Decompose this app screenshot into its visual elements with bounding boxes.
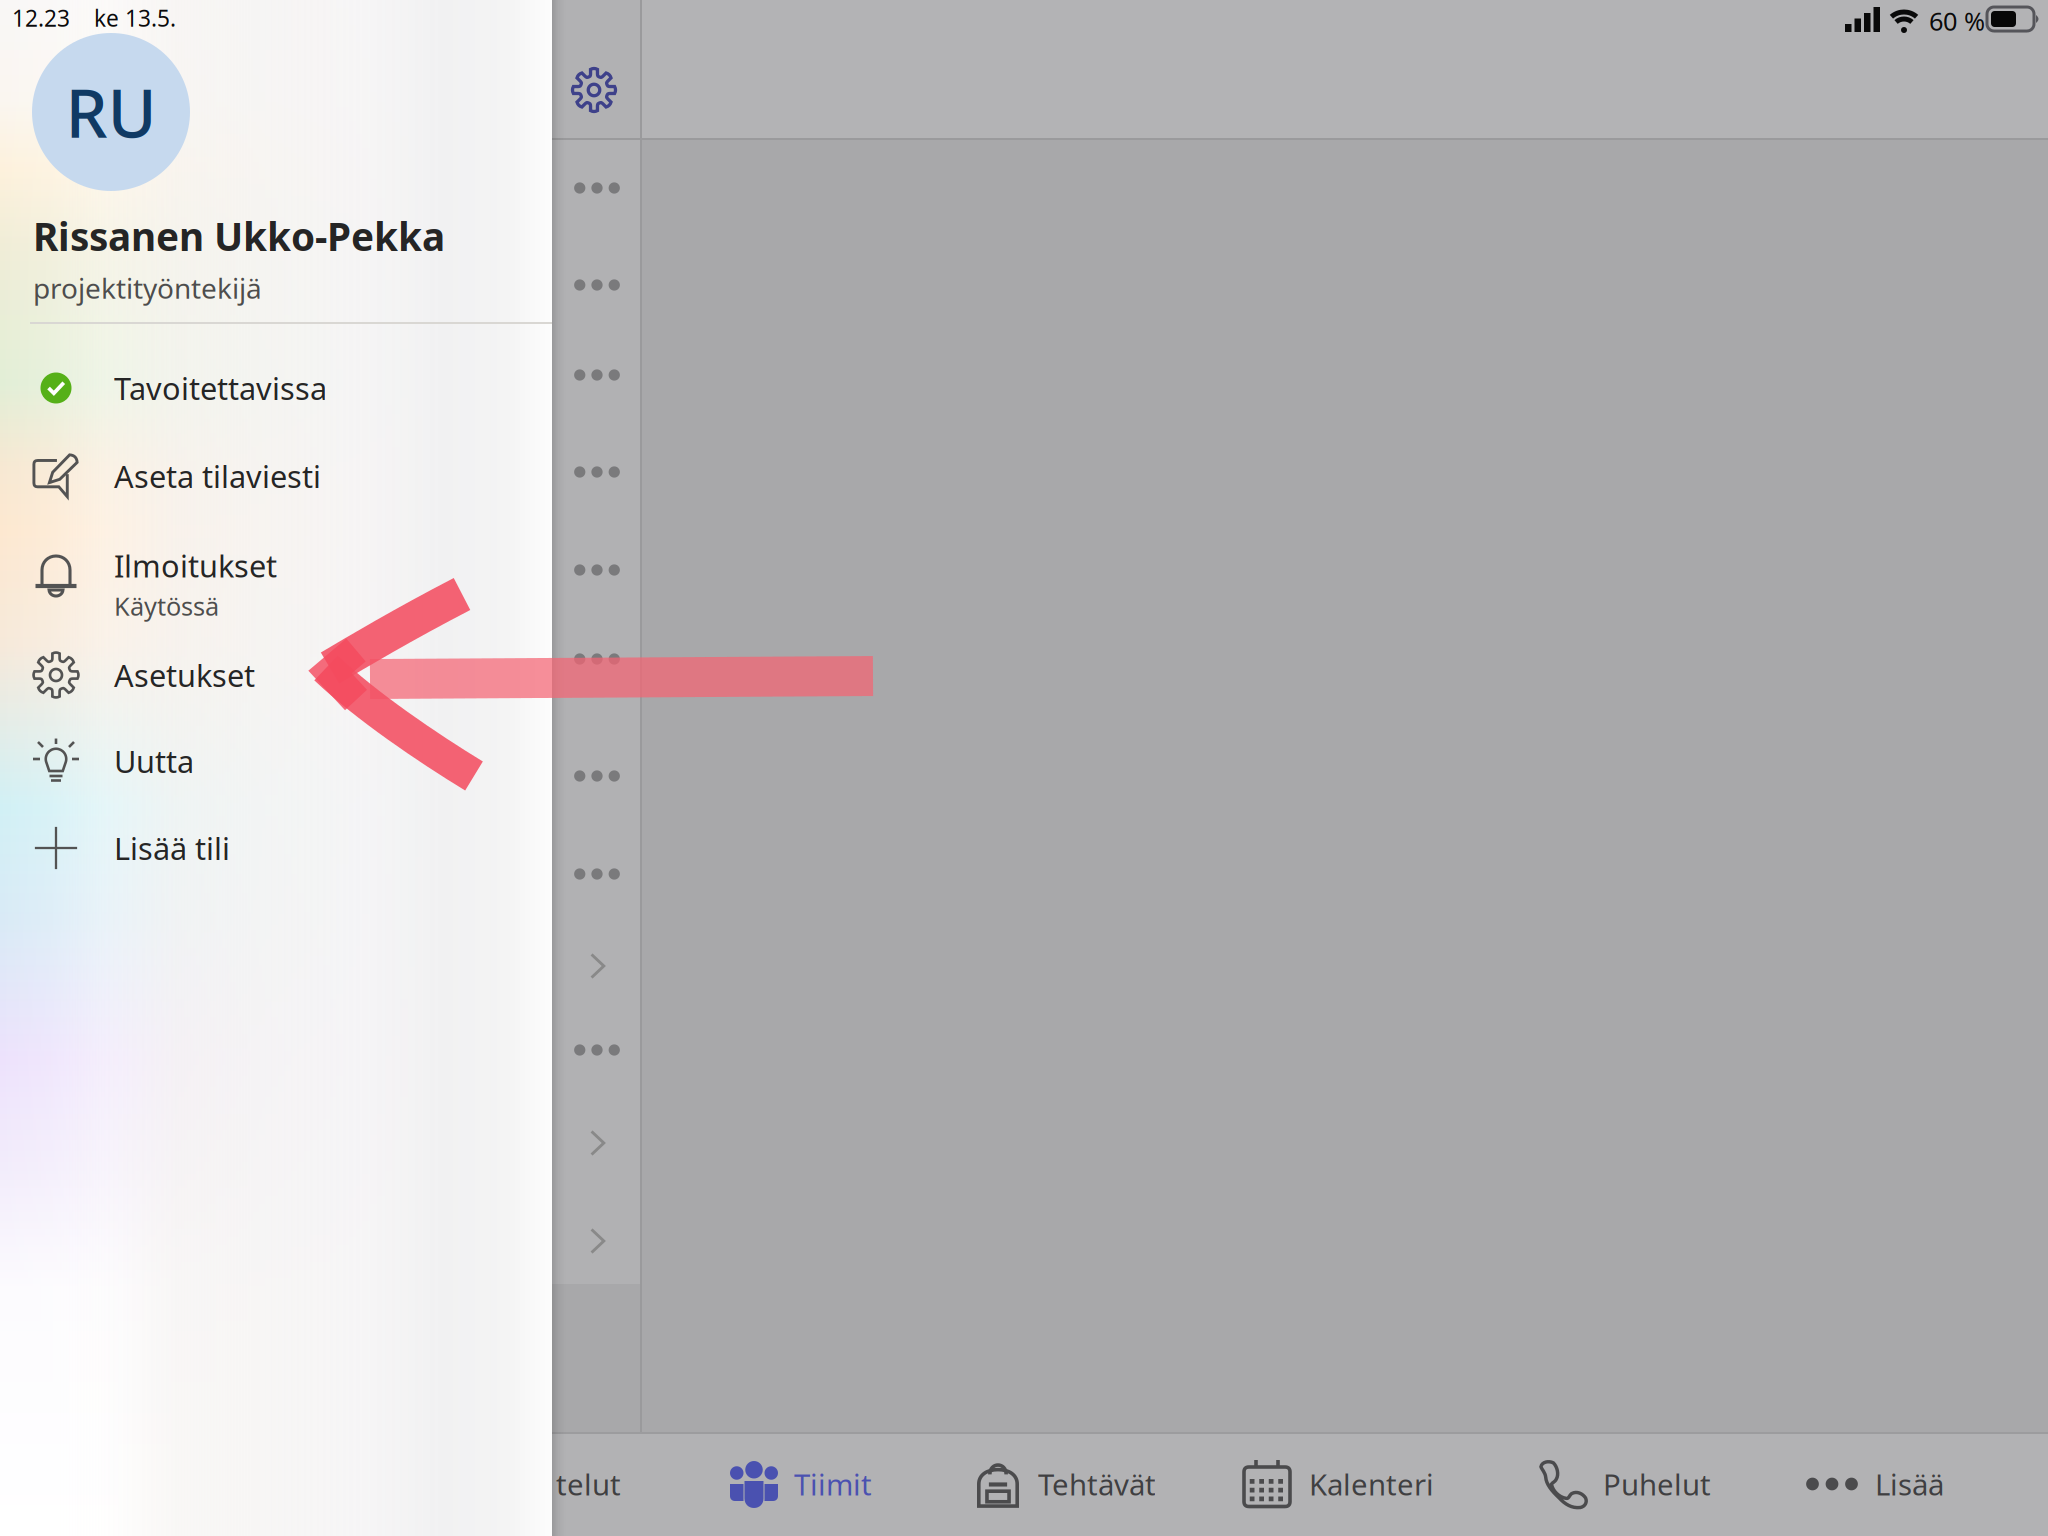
staticText: Lisää xyxy=(1875,1464,1944,1503)
staticText: Tiimit xyxy=(794,1464,872,1503)
staticText: Rissanen Ukko-Pekka xyxy=(33,210,445,262)
staticText: Tavoitettavissa xyxy=(114,368,327,408)
staticText: RU xyxy=(65,68,156,156)
button[interactable]: Tiimit xyxy=(728,1434,924,1534)
staticText: Lisää tili xyxy=(114,828,230,868)
button[interactable]: Ilmoitukset xyxy=(0,532,548,620)
staticText: Kalenteri xyxy=(1309,1464,1434,1503)
staticText: Aseta tilaviesti xyxy=(114,456,321,496)
button[interactable]: More options xyxy=(567,255,627,315)
staticText: 60 % xyxy=(1929,4,1985,38)
staticText: projektityöntekijä xyxy=(33,269,262,307)
button[interactable]: More options xyxy=(567,158,627,218)
button[interactable]: More options xyxy=(567,345,627,405)
staticText: ke 13.5. xyxy=(94,3,176,33)
staticText: Asetukset xyxy=(114,655,255,695)
button[interactable]: Asetukset xyxy=(0,631,548,719)
button[interactable]: More options xyxy=(567,629,627,689)
button[interactable]: telut xyxy=(556,1434,706,1534)
button[interactable]: More options xyxy=(567,540,627,600)
button[interactable]: Puhelut xyxy=(1537,1434,1773,1534)
button[interactable]: More options xyxy=(567,1020,627,1080)
button[interactable]: Uutta xyxy=(0,717,548,805)
staticText: Käytössä xyxy=(114,589,219,623)
staticText: Ilmoitukset xyxy=(114,545,277,586)
button[interactable]: Lisää xyxy=(1803,1434,2025,1534)
button[interactable]: Open xyxy=(567,936,627,996)
button[interactable]: Open xyxy=(567,1211,627,1271)
button[interactable]: Profile picture xyxy=(32,33,190,191)
staticText: Puhelut xyxy=(1603,1464,1711,1503)
staticText: 12.23 xyxy=(12,3,70,33)
button[interactable]: Settings xyxy=(556,52,632,128)
button[interactable]: Open xyxy=(567,1113,627,1173)
button[interactable]: Tehtävät xyxy=(972,1434,1218,1534)
button[interactable]: More options xyxy=(567,844,627,904)
button[interactable]: Aseta tilaviesti xyxy=(0,432,548,520)
button[interactable]: More options xyxy=(567,442,627,502)
staticText: Uutta xyxy=(114,741,194,781)
button[interactable]: Lisää tili xyxy=(0,804,548,892)
button[interactable]: Tavoitettavissa xyxy=(0,344,548,432)
staticText: Tehtävät xyxy=(1038,1464,1156,1503)
button[interactable]: Kalenteri xyxy=(1239,1434,1489,1534)
staticText: telut xyxy=(556,1464,621,1503)
button[interactable]: More options xyxy=(567,746,627,806)
